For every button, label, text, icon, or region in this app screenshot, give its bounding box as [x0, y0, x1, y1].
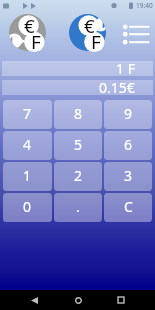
staticText: 0 — [23, 197, 32, 216]
button[interactable]: 5 — [54, 131, 102, 160]
button[interactable]: 9 — [104, 100, 152, 129]
button[interactable]: 4 — [3, 131, 52, 160]
staticText: € — [24, 13, 35, 39]
button[interactable]: Home — [69, 291, 87, 309]
staticText: 9 — [124, 104, 133, 123]
staticText: 2 — [74, 166, 83, 185]
staticText: 0,15€ — [99, 78, 135, 93]
staticText: 4 — [23, 135, 32, 154]
staticText: 1 — [23, 166, 32, 185]
staticText: C — [124, 197, 133, 216]
button[interactable]: Back — [25, 291, 43, 309]
button[interactable]: 8 — [54, 100, 102, 129]
staticText: 19:40 — [136, 1, 153, 10]
staticText: € — [84, 13, 95, 39]
button[interactable]: 1 F — [2, 61, 153, 76]
button[interactable]: Currency list — [118, 21, 152, 46]
button[interactable]: Franc to Euro — [69, 14, 106, 51]
staticText: 8 — [74, 104, 83, 123]
button[interactable]: Euro to Franc — [9, 14, 46, 51]
staticText: 3 — [124, 166, 133, 185]
button[interactable]: 6 — [104, 131, 152, 160]
button[interactable]: 0 — [3, 193, 52, 222]
staticText: 7 — [23, 104, 32, 123]
staticText: 1 F — [116, 59, 135, 74]
button[interactable]: 2 — [54, 162, 102, 191]
button[interactable]: . — [54, 193, 102, 222]
button[interactable]: 3 — [104, 162, 152, 191]
button[interactable]: Recents — [112, 291, 130, 309]
button[interactable]: C — [104, 193, 152, 222]
staticText: F — [91, 29, 101, 55]
button[interactable]: 0,15€ — [2, 80, 153, 95]
staticText: 5 — [74, 135, 83, 154]
staticText: 6 — [124, 135, 133, 154]
staticText: . — [76, 197, 80, 216]
button[interactable]: 7 — [3, 100, 52, 129]
button[interactable]: 1 — [3, 162, 52, 191]
staticText: F — [31, 29, 41, 55]
